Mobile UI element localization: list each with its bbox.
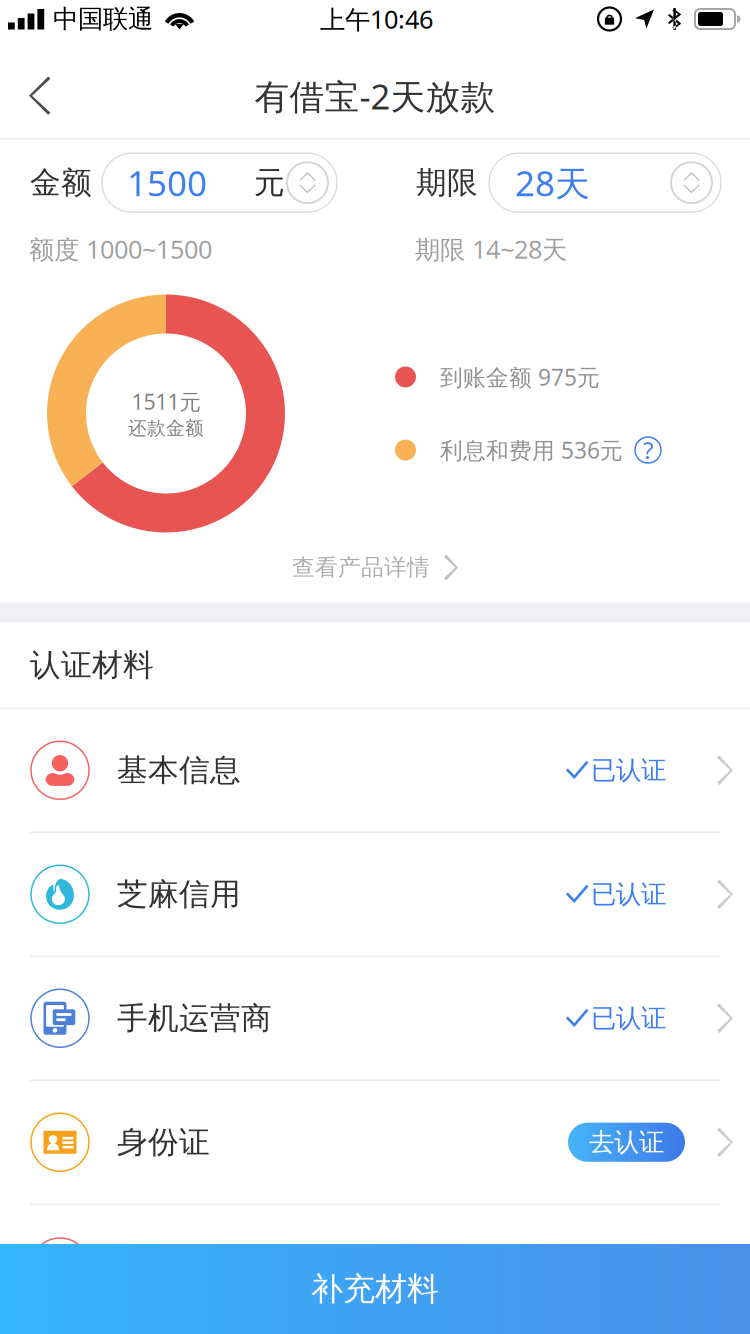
staticText: 金额 (30, 164, 92, 201)
staticText: 已认证 (591, 1003, 666, 1034)
staticText: 去认证 (589, 1127, 664, 1158)
staticText: 期限 (416, 164, 478, 201)
staticText: 利息和费用 536元 (440, 435, 623, 465)
staticText: 已认证 (591, 879, 666, 910)
staticText: 手机运营商 (117, 999, 272, 1037)
button[interactable]: 1500 (102, 153, 337, 212)
staticText: 中国联通 (53, 3, 153, 34)
button[interactable]: 费用说明 (635, 437, 661, 463)
staticText: 有借宝-2天放款 (254, 73, 495, 119)
staticText: 额度 1000~1500 (29, 232, 212, 266)
staticText: 补充材料 (311, 1269, 439, 1309)
staticText: 查看产品详情 (292, 554, 430, 581)
button[interactable]: 返回 (0, 51, 80, 141)
staticText: 认证材料 (30, 646, 154, 684)
button[interactable]: 基本信息 (0, 709, 750, 831)
staticText: ? (643, 434, 653, 466)
button[interactable]: 芝麻信用 (0, 833, 750, 955)
staticText: 到账金额 975元 (440, 362, 600, 392)
staticText: 基本信息 (117, 751, 241, 789)
staticText: 已认证 (591, 755, 666, 786)
button[interactable]: 查看产品详情 (0, 547, 750, 602)
staticText: 28天 (515, 160, 590, 206)
staticText: 芝麻信用 (117, 875, 241, 913)
staticText: 上午10:46 (320, 2, 433, 36)
staticText: 还款金额 (128, 417, 204, 440)
button[interactable]: 补充材料 (0, 1244, 750, 1334)
staticText: 期限 14~28天 (415, 232, 567, 266)
staticText: 元 (254, 164, 285, 201)
staticText: 1511元 (131, 387, 200, 416)
staticText: 身份证 (117, 1123, 210, 1161)
button[interactable]: 身份证 (0, 1081, 750, 1203)
staticText: 1500 (127, 160, 207, 206)
button[interactable]: 手机运营商 (0, 957, 750, 1079)
button[interactable]: 28天 (489, 153, 721, 212)
